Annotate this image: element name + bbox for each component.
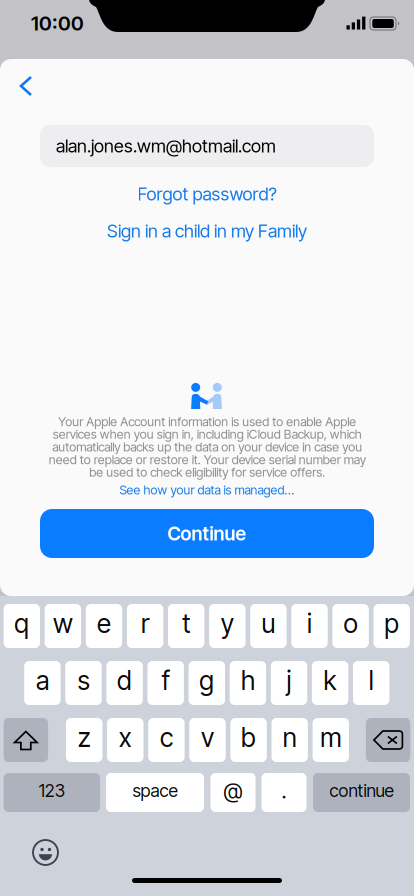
button[interactable]: r [127, 604, 163, 648]
button[interactable]: q [4, 604, 40, 648]
button[interactable]: @ [210, 773, 255, 812]
staticText: . [281, 778, 286, 804]
button[interactable]: Shift [4, 718, 48, 762]
button[interactable]: b [230, 718, 267, 762]
staticText: p [384, 608, 399, 639]
staticText: h [241, 665, 255, 696]
staticText: k [324, 665, 337, 696]
button[interactable]: alan.jones.wm@hotmail.com [40, 125, 374, 167]
button[interactable]: a [24, 661, 61, 705]
button[interactable]: l [353, 661, 389, 705]
staticText: y [221, 608, 234, 639]
button[interactable]: p [373, 604, 410, 648]
staticText: See how your data is managed… [119, 482, 294, 498]
staticText: continue [329, 780, 393, 801]
staticText: q [14, 608, 29, 639]
staticText: o [344, 608, 358, 639]
button[interactable]: o [332, 604, 369, 648]
button[interactable]: x [107, 718, 143, 762]
button[interactable]: y [209, 604, 245, 648]
button[interactable]: n [271, 718, 308, 762]
staticText: Forgot password? [137, 183, 276, 205]
staticText: n [283, 722, 297, 753]
button[interactable]: w [45, 604, 81, 648]
button[interactable]: Emoji [33, 840, 58, 865]
button[interactable]: i [291, 604, 328, 648]
staticText: Continue [167, 522, 246, 545]
staticText: e [97, 608, 111, 639]
button[interactable]: g [189, 661, 225, 705]
staticText: d [117, 665, 132, 696]
button[interactable]: u [250, 604, 287, 648]
button[interactable]: Forgot password? [0, 181, 414, 207]
button[interactable]: Continue [40, 509, 374, 558]
button[interactable]: t [168, 604, 204, 648]
button[interactable]: e [86, 604, 122, 648]
staticText: s [77, 665, 89, 696]
staticText: u [261, 608, 275, 639]
staticText: Sign in a child in my Family [107, 220, 307, 242]
button[interactable]: z [66, 718, 102, 762]
button[interactable]: k [312, 661, 348, 705]
staticText: r [141, 608, 149, 639]
button[interactable]: s [65, 661, 102, 705]
button[interactable]: See how your data is managed… [0, 483, 414, 497]
button[interactable]: Sign in a child in my Family [0, 218, 414, 244]
button[interactable]: . [261, 773, 306, 812]
staticText: b [241, 722, 256, 753]
staticText: g [199, 665, 214, 696]
button[interactable]: Delete [366, 718, 410, 762]
staticText: Your Apple Account information is used t… [48, 414, 365, 480]
staticText: 10:00 [31, 11, 84, 35]
staticText: t [182, 608, 190, 639]
staticText: i [307, 608, 312, 639]
staticText: a [36, 665, 49, 696]
button[interactable]: 123 [4, 773, 100, 812]
staticText: z [78, 722, 91, 753]
staticText: j [286, 665, 291, 696]
staticText: l [369, 665, 374, 696]
staticText: v [201, 722, 214, 753]
staticText: x [119, 722, 132, 753]
button[interactable]: v [189, 718, 226, 762]
button[interactable]: Back [7, 68, 51, 104]
staticText: w [53, 608, 73, 639]
button[interactable]: c [148, 718, 185, 762]
button[interactable]: space [106, 773, 204, 812]
staticText: 123 [39, 780, 65, 801]
button[interactable]: continue [313, 773, 410, 812]
staticText: space [132, 780, 177, 801]
button[interactable]: j [271, 661, 307, 705]
button[interactable]: m [313, 718, 349, 762]
staticText: c [160, 722, 173, 753]
staticText: m [320, 722, 341, 753]
button[interactable]: h [230, 661, 266, 705]
button[interactable]: f [147, 661, 184, 705]
staticText: alan.jones.wm@hotmail.com [56, 135, 276, 157]
button[interactable]: d [106, 661, 143, 705]
staticText: @ [223, 778, 242, 804]
staticText: f [162, 665, 170, 696]
